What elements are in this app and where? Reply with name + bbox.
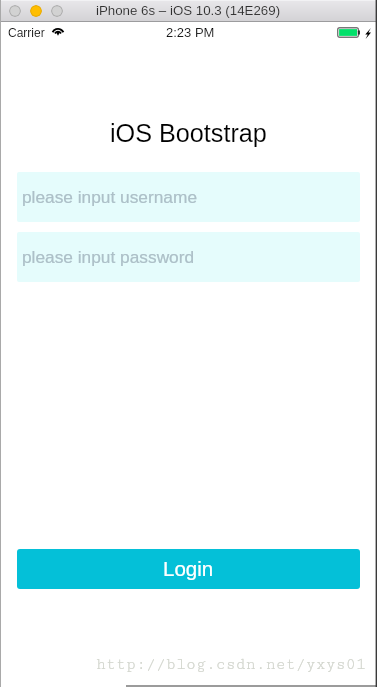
staticText: Login xyxy=(163,557,214,580)
staticText: please input username xyxy=(22,187,198,206)
staticText: http://blog.csdn.net/yxys01 xyxy=(96,655,366,673)
button[interactable]: Login xyxy=(17,549,360,589)
button[interactable]: please input username xyxy=(17,172,360,222)
staticText: Carrier xyxy=(8,26,45,39)
button[interactable]: Minimize window xyxy=(30,5,42,17)
button[interactable]: please input password xyxy=(17,232,360,282)
button[interactable]: Close window xyxy=(9,5,21,17)
button[interactable]: Zoom window xyxy=(51,5,63,17)
staticText: please input password xyxy=(22,247,195,266)
staticText: iPhone 6s – iOS 10.3 (14E269) xyxy=(96,3,281,18)
staticText: 2:23 PM xyxy=(166,25,215,40)
staticText: iOS Bootstrap xyxy=(110,119,267,147)
